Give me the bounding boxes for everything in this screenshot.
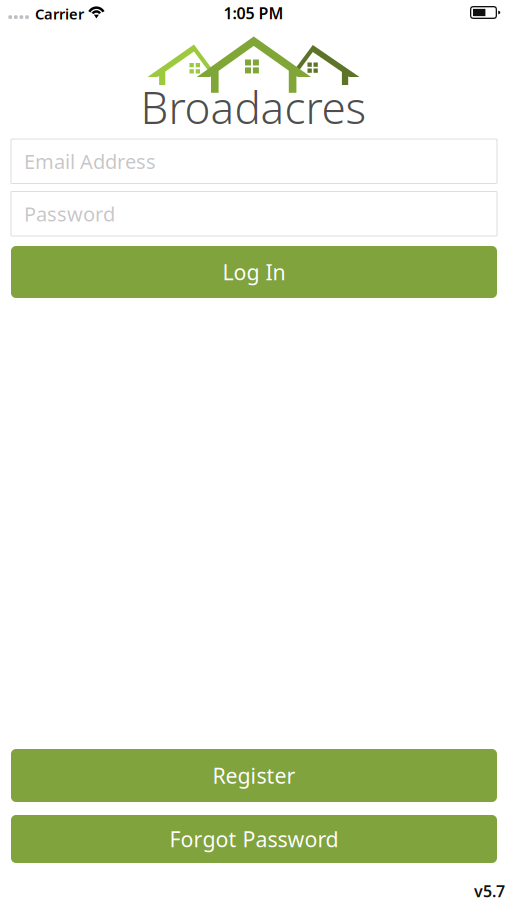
button[interactable]: Forgot Password [11, 815, 497, 863]
button[interactable]: Log In [11, 246, 497, 298]
button[interactable]: Password [11, 191, 497, 236]
staticText: Broadacres [140, 78, 366, 136]
staticText: Password [24, 200, 115, 227]
staticText: Register [212, 761, 295, 790]
staticText: Log In [222, 258, 285, 286]
staticText: Email Address [24, 148, 156, 175]
staticText: 1:05 PM [223, 2, 283, 24]
button[interactable]: Email Address [11, 139, 497, 183]
staticText: v5.7 [474, 880, 505, 900]
button[interactable]: Register [11, 749, 497, 802]
staticText: Carrier [35, 4, 84, 23]
staticText: Forgot Password [169, 825, 338, 853]
